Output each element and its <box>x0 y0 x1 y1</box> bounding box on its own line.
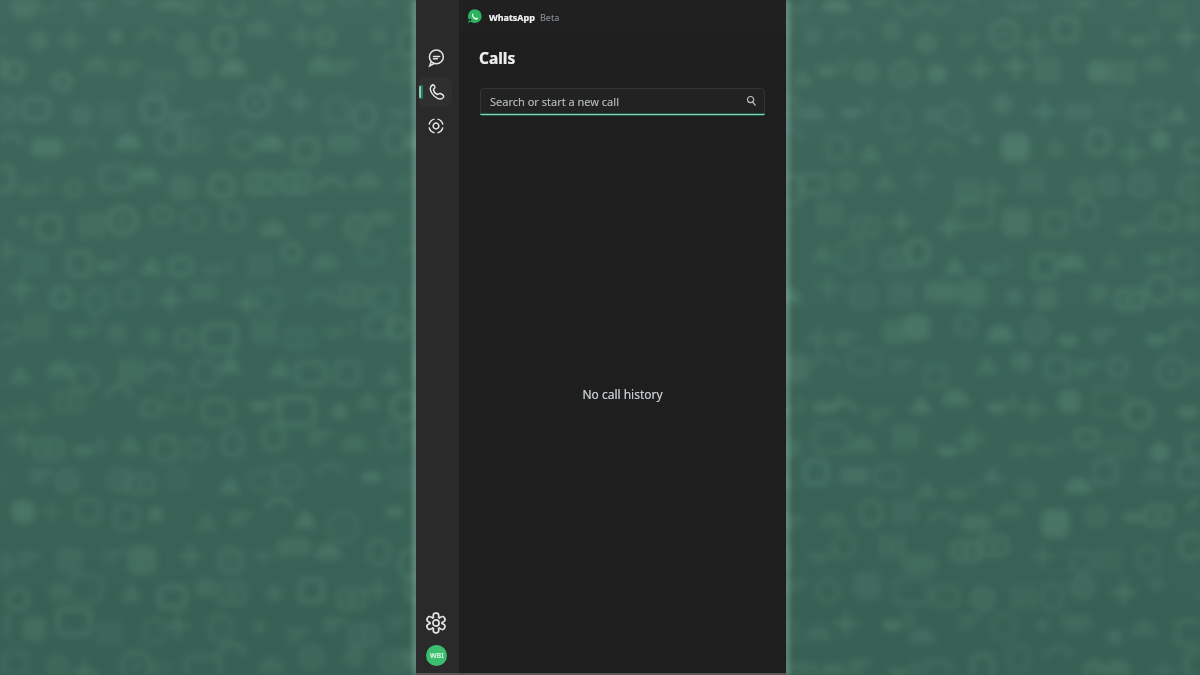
button[interactable]: Calls <box>419 77 452 107</box>
staticText: WBI <box>430 651 444 661</box>
staticText: No call history <box>459 386 786 402</box>
staticText: WhatsApp <box>489 11 535 23</box>
button[interactable]: Status <box>419 111 452 141</box>
staticText: Beta <box>540 11 560 23</box>
staticText: Search or start a new call <box>490 94 619 109</box>
button[interactable]: Profile <box>426 645 447 666</box>
button[interactable]: Chats <box>419 43 452 73</box>
staticText: Calls <box>479 47 516 68</box>
button[interactable]: Settings <box>419 608 452 638</box>
button[interactable]: Search or start a new call <box>480 88 765 116</box>
